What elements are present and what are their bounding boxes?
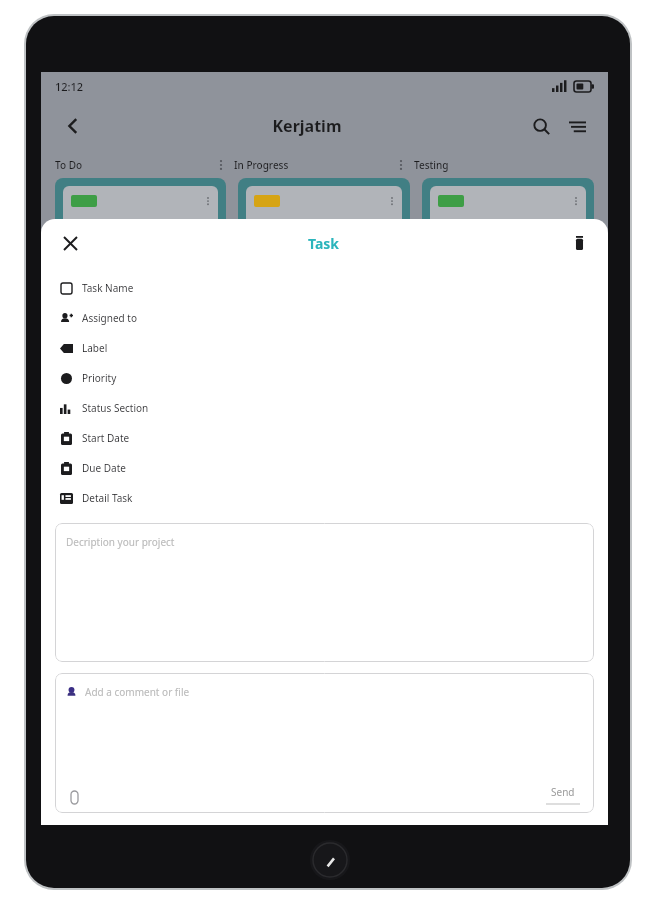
button[interactable] (238, 178, 410, 258)
button[interactable]: Start Date (41, 423, 608, 453)
staticText: Priority (82, 371, 117, 385)
button[interactable] (55, 178, 226, 258)
staticText: To Do (55, 158, 83, 172)
button[interactable]: Attach file (66, 789, 82, 805)
button[interactable]: Search (526, 111, 556, 141)
staticText: Label (82, 341, 108, 355)
staticText: 12:12 (55, 79, 84, 94)
staticText: Status Section (82, 401, 149, 415)
button[interactable]: Detail Task (41, 483, 608, 513)
button[interactable]: Back (57, 110, 89, 142)
staticText: Due Date (82, 461, 126, 475)
button[interactable]: Delete (564, 228, 594, 258)
button[interactable]: Task Name (41, 273, 608, 303)
button[interactable]: Status Section (41, 393, 608, 423)
button[interactable]: Decription your project (55, 523, 594, 662)
button[interactable]: Menu (562, 111, 592, 141)
staticText: Detail Task (82, 491, 133, 505)
staticText: Task (308, 234, 340, 253)
button[interactable]: Close (55, 228, 85, 258)
staticText: In Progress (234, 158, 289, 172)
button[interactable]: Due Date (41, 453, 608, 483)
button[interactable]: Label (41, 333, 608, 363)
staticText: Decription your project (66, 535, 175, 549)
button[interactable]: Priority (41, 363, 608, 393)
staticText: Kerjatim (272, 115, 342, 137)
button[interactable]: Send (546, 785, 580, 805)
staticText: Assigned to (82, 311, 137, 325)
button[interactable]: Add a comment or file (55, 673, 594, 813)
staticText: Add a comment or file (85, 685, 190, 699)
staticText: Send (551, 785, 575, 799)
staticText: Task Name (82, 281, 134, 295)
button[interactable] (422, 178, 594, 258)
staticText: Start Date (82, 431, 130, 445)
button[interactable]: Assigned to (41, 303, 608, 333)
staticText: Testing (414, 158, 449, 172)
